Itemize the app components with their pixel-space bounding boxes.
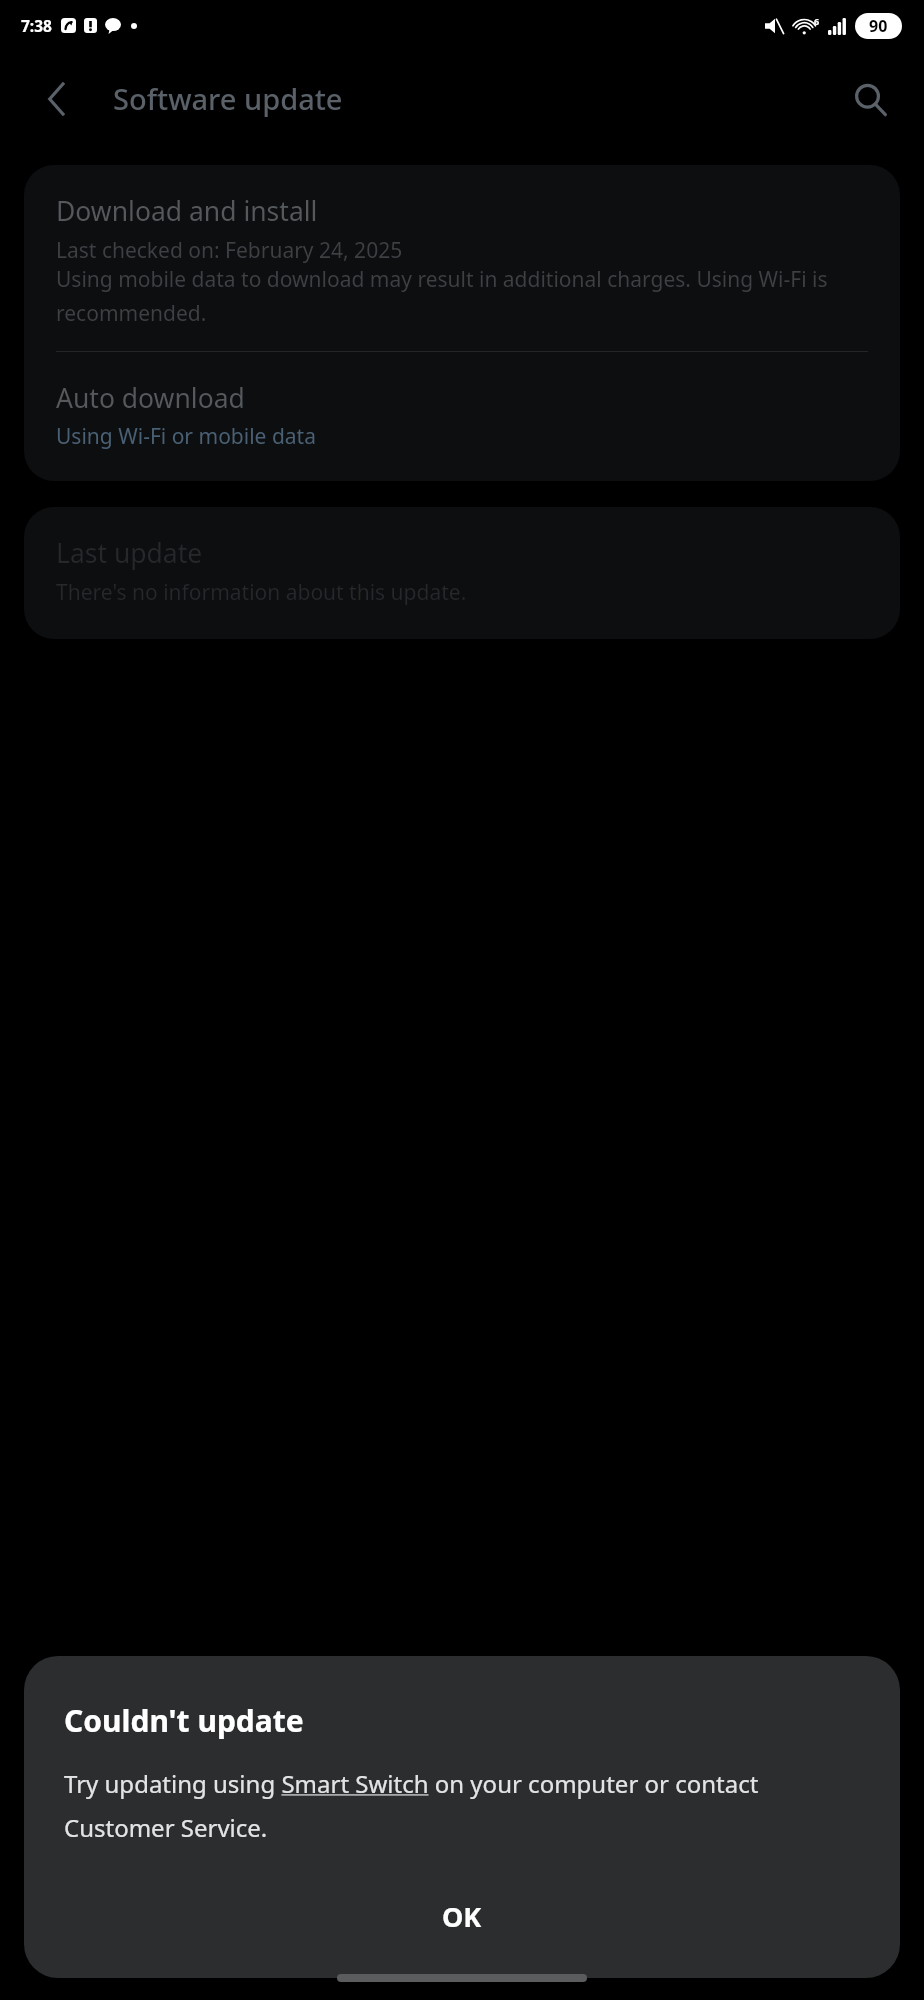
staticText: 6	[814, 15, 820, 27]
staticText: Couldn't update	[64, 1700, 304, 1741]
button[interactable]: Search	[844, 73, 896, 125]
staticText: Try updating using Smart Switch on your …	[64, 1767, 860, 1844]
staticText: Using Wi-Fi or mobile data	[56, 422, 316, 451]
staticText: Last checked on: February 24, 2025	[56, 236, 403, 265]
staticText: There's no information about this update…	[56, 578, 467, 607]
staticText: Auto download	[56, 380, 245, 416]
staticText: 7:38	[21, 15, 52, 36]
button[interactable]: OK	[24, 1878, 900, 1954]
button[interactable]: Auto download	[24, 352, 900, 481]
button[interactable]: Last update	[24, 507, 900, 639]
staticText: 90	[869, 15, 888, 37]
staticText: OK	[442, 1898, 482, 1935]
button[interactable]: Back	[34, 77, 78, 121]
staticText: Software update	[113, 79, 343, 118]
staticText: Download and install	[56, 193, 318, 229]
button[interactable]: Download and install	[24, 165, 900, 351]
staticText: Last update	[56, 535, 203, 571]
staticText: Using mobile data to download may result…	[56, 265, 872, 327]
